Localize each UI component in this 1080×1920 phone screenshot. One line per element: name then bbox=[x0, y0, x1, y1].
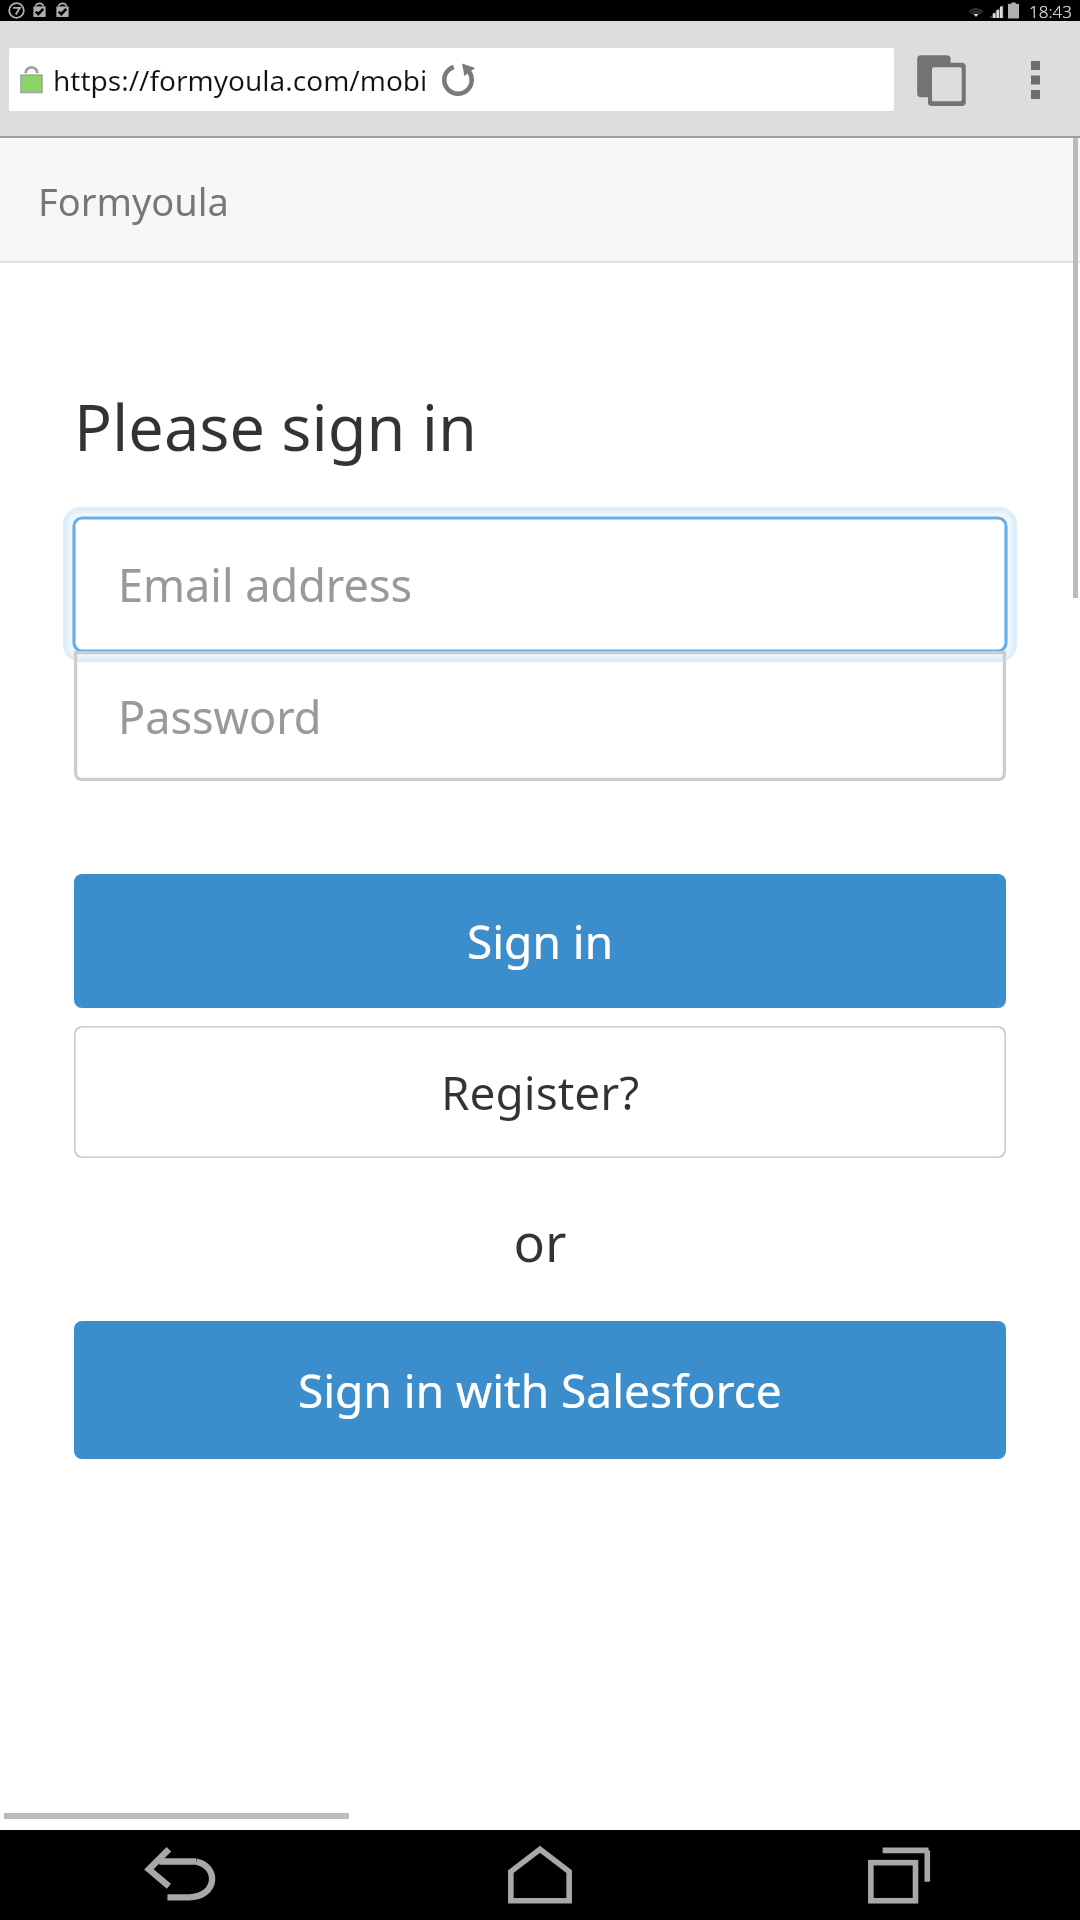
button[interactable]: Password bbox=[74, 651, 1006, 781]
button[interactable]: More options bbox=[990, 21, 1080, 138]
staticText: Sign in with Salesforce bbox=[298, 1359, 782, 1422]
staticText: Password bbox=[118, 686, 322, 747]
staticText: https://formyoula.com/mobi bbox=[53, 61, 428, 99]
button[interactable]: Register? bbox=[74, 1026, 1006, 1158]
staticText: or bbox=[0, 1206, 1080, 1277]
button[interactable]: Email address bbox=[74, 518, 1006, 651]
staticText: Please sign in bbox=[74, 384, 478, 470]
button[interactable]: Sign in with Salesforce bbox=[74, 1321, 1006, 1459]
button[interactable]: Recent apps bbox=[720, 1830, 1080, 1920]
staticText: Register? bbox=[441, 1061, 640, 1124]
button[interactable]: Home bbox=[360, 1830, 720, 1920]
button[interactable]: Sign in bbox=[74, 874, 1006, 1008]
staticText: 18:43 bbox=[1029, 0, 1072, 21]
button[interactable]: https://formyoula.com/mobi bbox=[9, 48, 894, 111]
button[interactable]: Back bbox=[0, 1830, 360, 1920]
staticText: Sign in bbox=[467, 910, 614, 973]
staticText: Email address bbox=[118, 554, 413, 615]
staticText: Formyoula bbox=[38, 175, 229, 227]
button[interactable]: Tabs: 4 open bbox=[894, 21, 990, 138]
